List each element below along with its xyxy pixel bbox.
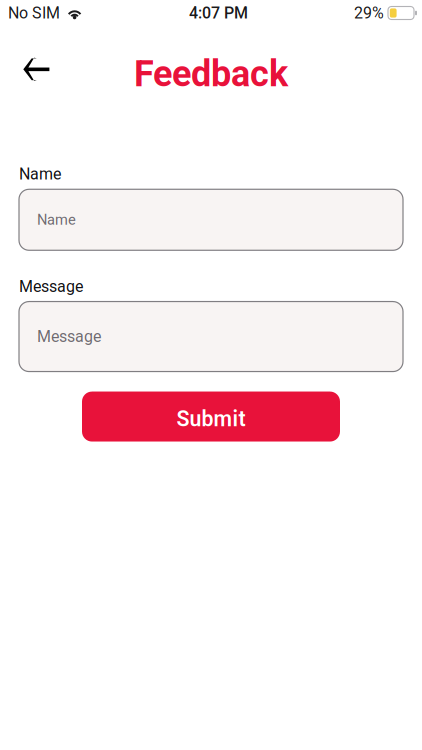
staticText: No SIM — [8, 4, 60, 22]
button[interactable]: Submit — [82, 392, 340, 442]
staticText: Submit — [176, 407, 245, 431]
staticText: Name — [37, 211, 76, 228]
staticText: Message — [37, 327, 101, 346]
staticText: Feedback — [134, 53, 288, 94]
button[interactable]: Message — [19, 302, 403, 372]
staticText: 29% — [354, 4, 384, 22]
button[interactable]: Name — [19, 189, 403, 250]
button[interactable]: Back — [14, 47, 58, 100]
staticText: Message — [19, 277, 83, 296]
staticText: Name — [19, 165, 61, 183]
staticText: 4:07 PM — [189, 4, 248, 22]
